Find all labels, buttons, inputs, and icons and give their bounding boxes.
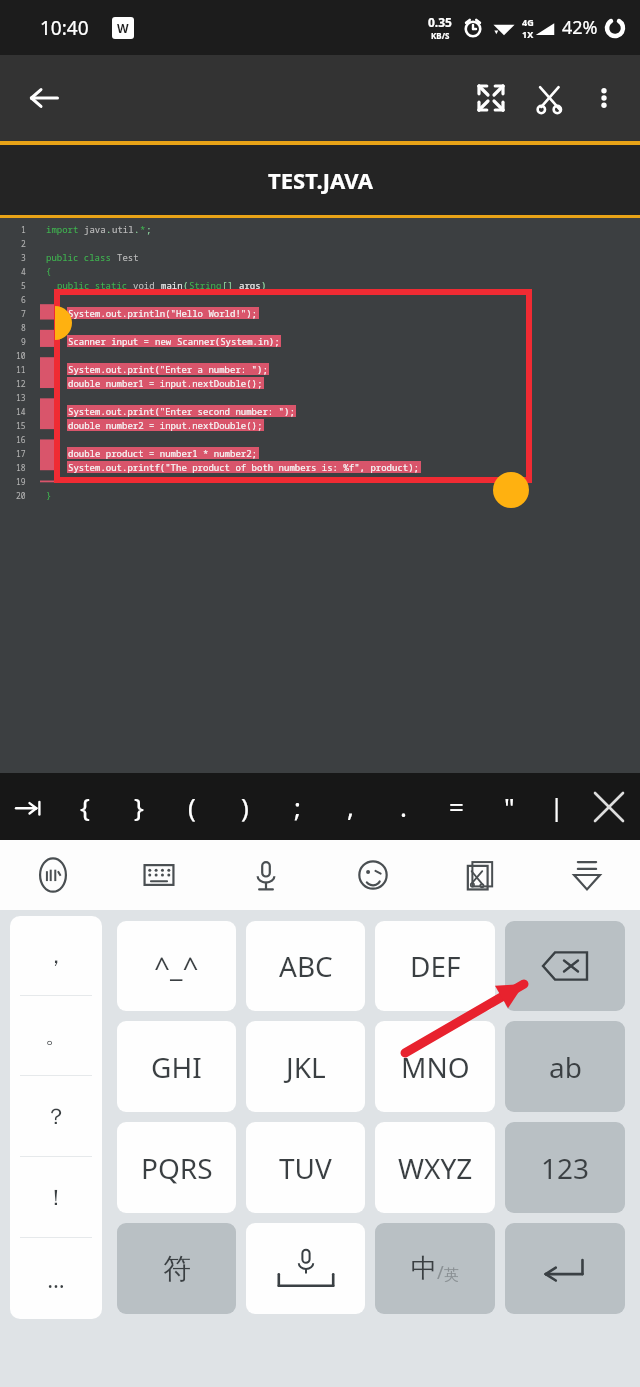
- button[interactable]: Emoji: [319, 840, 426, 910]
- staticText: System.out.printf("The product of both n…: [68, 461, 420, 473]
- staticText: Scanner(System.in);: [177, 335, 280, 347]
- button[interactable]: PQRS: [117, 1122, 236, 1213]
- button[interactable]: Clipboard: [426, 840, 533, 910]
- button[interactable]: 123: [505, 1122, 625, 1213]
- staticText: 42%: [562, 15, 598, 40]
- button[interactable]: 中: [375, 1223, 495, 1314]
- staticText: import: [46, 223, 84, 235]
- button[interactable]: }: [112, 773, 165, 840]
- button[interactable]: ": [483, 773, 536, 840]
- staticText: {: [46, 265, 52, 277]
- button[interactable]: Delete: [505, 921, 625, 1011]
- button[interactable]: ！: [10, 1157, 102, 1238]
- button[interactable]: Hide keyboard: [533, 840, 640, 910]
- button[interactable]: ;: [271, 773, 324, 840]
- button[interactable]: GHI: [117, 1021, 236, 1112]
- button[interactable]: Cut: [520, 69, 578, 127]
- button[interactable]: JKL: [246, 1021, 365, 1112]
- button[interactable]: Back: [16, 70, 72, 126]
- button[interactable]: =: [430, 773, 483, 840]
- staticText: 2: [21, 238, 26, 249]
- staticText: (: [188, 789, 196, 824]
- button[interactable]: DEF: [375, 921, 495, 1011]
- staticText: ): [261, 279, 267, 291]
- staticText: public static: [57, 279, 133, 291]
- staticText: ？: [45, 1103, 67, 1131]
- button[interactable]: ): [218, 773, 271, 840]
- staticText: 8: [21, 322, 26, 333]
- staticText: /: [437, 1260, 444, 1285]
- button[interactable]: ^_^: [117, 921, 236, 1011]
- button[interactable]: Voice input: [212, 840, 319, 910]
- staticText: 4: [21, 266, 26, 277]
- staticText: util: [112, 223, 134, 235]
- staticText: System.out.print("Enter a number: ");: [68, 363, 268, 375]
- staticText: 3: [21, 252, 26, 263]
- staticText: main: [161, 279, 183, 291]
- staticText: System.out.print("Enter second number: "…: [68, 405, 295, 417]
- staticText: 9: [21, 336, 26, 347]
- button[interactable]: More options: [578, 72, 630, 124]
- staticText: PQRS: [141, 1149, 213, 1187]
- staticText: TEST.JAVA: [268, 165, 373, 195]
- staticText: ;: [146, 223, 152, 235]
- button[interactable]: Keyboard layout: [106, 840, 212, 910]
- staticText: }: [134, 789, 144, 824]
- staticText: {: [80, 789, 90, 824]
- staticText: *: [140, 223, 146, 235]
- staticText: TUV: [279, 1149, 332, 1187]
- button[interactable]: 符: [117, 1223, 236, 1314]
- staticText: ^_^: [154, 947, 199, 985]
- staticText: ": [504, 789, 515, 824]
- staticText: 18: [16, 462, 26, 473]
- staticText: Scanner input =: [68, 335, 155, 347]
- staticText: 5: [21, 280, 26, 291]
- staticText: 英: [444, 1266, 459, 1285]
- staticText: double number1 = input.nextDouble();: [68, 377, 263, 389]
- button[interactable]: WXYZ: [375, 1122, 495, 1213]
- button[interactable]: ab: [505, 1021, 625, 1112]
- button[interactable]: ABC: [246, 921, 365, 1011]
- staticText: 17: [16, 448, 26, 459]
- staticText: ABC: [279, 947, 333, 985]
- button[interactable]: Enter: [505, 1223, 625, 1314]
- staticText: new: [155, 335, 177, 347]
- staticText: …: [47, 1264, 65, 1294]
- staticText: ,: [347, 789, 354, 824]
- staticText: 19: [16, 476, 26, 487]
- button[interactable]: Tab: [0, 773, 58, 840]
- staticText: WXYZ: [398, 1149, 473, 1187]
- button[interactable]: …: [10, 1238, 102, 1319]
- button[interactable]: Input method: [0, 840, 106, 910]
- staticText: java: [84, 223, 106, 235]
- staticText: ！: [45, 1184, 67, 1212]
- staticText: double number2 = input.nextDouble();: [68, 419, 263, 431]
- button[interactable]: .: [377, 773, 430, 840]
- staticText: DEF: [410, 947, 461, 985]
- button[interactable]: MNO: [375, 1021, 495, 1112]
- button[interactable]: ，: [10, 916, 102, 996]
- button[interactable]: TUV: [246, 1122, 365, 1213]
- staticText: args: [239, 279, 261, 291]
- button[interactable]: Close toolbar: [578, 773, 640, 840]
- staticText: KB/S: [431, 30, 450, 41]
- button[interactable]: ？: [10, 1076, 102, 1157]
- staticText: 中: [411, 1252, 437, 1285]
- staticText: Test: [117, 251, 139, 263]
- staticText: 12: [16, 378, 26, 389]
- button[interactable]: |: [536, 773, 578, 840]
- staticText: 1X: [522, 28, 534, 40]
- staticText: .: [134, 223, 140, 235]
- button[interactable]: ,: [324, 773, 377, 840]
- staticText: 4G: [522, 16, 534, 28]
- button[interactable]: Fullscreen: [462, 69, 520, 127]
- staticText: ;: [294, 789, 301, 824]
- staticText: ): [241, 789, 249, 824]
- button[interactable]: Space: [246, 1223, 365, 1314]
- staticText: 16: [16, 434, 26, 445]
- button[interactable]: 。: [10, 996, 102, 1076]
- staticText: void: [133, 279, 161, 291]
- staticText: 6: [21, 294, 26, 305]
- button[interactable]: {: [58, 773, 112, 840]
- button[interactable]: (: [165, 773, 218, 840]
